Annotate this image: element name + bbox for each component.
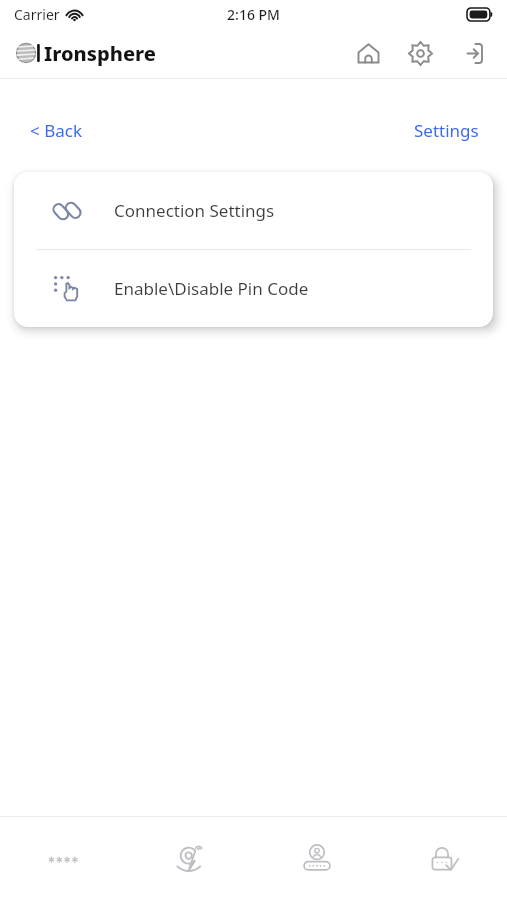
staticText: Settings xyxy=(414,119,479,141)
staticText: 2:16 PM xyxy=(227,5,280,24)
staticText: Ironsphere xyxy=(44,40,156,67)
button[interactable]: Log out xyxy=(453,34,491,72)
button[interactable]: Settings xyxy=(400,115,493,145)
staticText: Connection Settings xyxy=(114,199,275,222)
button[interactable]: < Back xyxy=(14,115,98,145)
button[interactable]: Location xyxy=(126,817,253,900)
button[interactable]: Account xyxy=(253,817,380,900)
staticText: Carrier xyxy=(14,5,60,24)
button[interactable]: Enable\Disable Pin Code xyxy=(14,250,493,327)
staticText: Enable\Disable Pin Code xyxy=(114,277,309,300)
button[interactable]: Settings xyxy=(401,34,439,72)
staticText: < Back xyxy=(30,119,82,141)
button[interactable]: Passcode xyxy=(0,817,126,900)
button[interactable]: Home xyxy=(349,34,387,72)
button[interactable]: Connection Settings xyxy=(14,172,493,249)
button[interactable]: Security xyxy=(380,817,507,900)
